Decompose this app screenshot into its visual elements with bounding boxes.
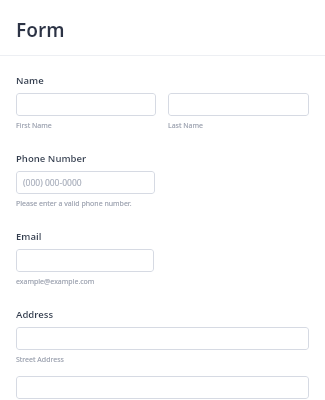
staticText: example@example.com: [16, 277, 95, 287]
button[interactable]: [16, 376, 309, 399]
staticText: (000) 000-0000: [23, 177, 82, 189]
staticText: Please enter a valid phone number.: [16, 199, 132, 209]
staticText: Phone Number: [16, 152, 87, 165]
staticText: Form: [16, 17, 65, 43]
staticText: First Name: [16, 121, 52, 131]
staticText: Address: [16, 308, 54, 321]
staticText: Email: [16, 230, 42, 243]
button[interactable]: [16, 327, 309, 350]
button[interactable]: [16, 249, 154, 272]
button[interactable]: [16, 93, 156, 116]
button[interactable]: (000) 000-0000: [16, 171, 155, 194]
staticText: Name: [16, 74, 44, 87]
staticText: Last Name: [168, 121, 204, 131]
button[interactable]: [168, 93, 309, 116]
staticText: Street Address: [16, 355, 64, 365]
